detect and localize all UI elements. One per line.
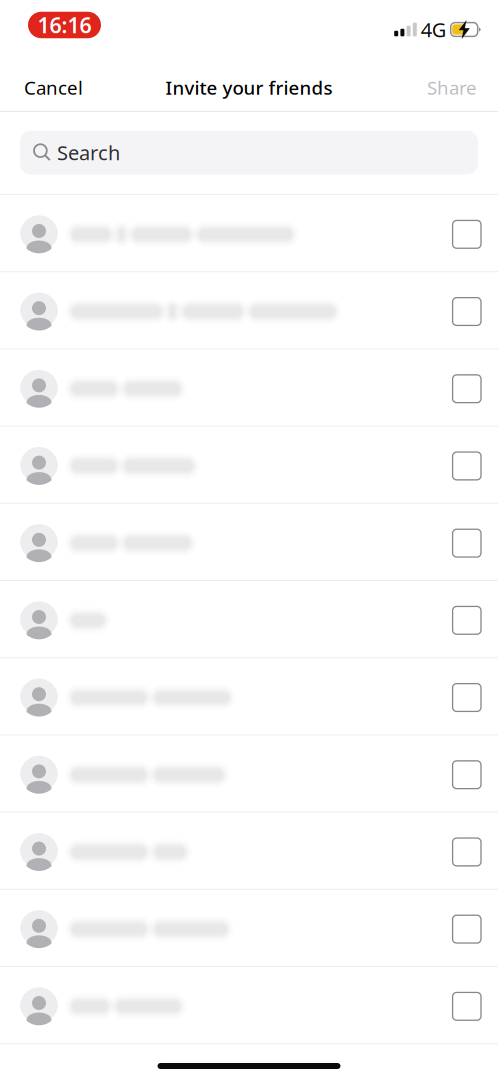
staticText: Cancel bbox=[24, 75, 83, 100]
staticText: 16:16 bbox=[37, 11, 91, 39]
button[interactable] bbox=[0, 504, 498, 581]
button[interactable] bbox=[0, 890, 498, 967]
staticText: Search bbox=[57, 139, 120, 166]
button[interactable] bbox=[0, 813, 498, 890]
button[interactable] bbox=[0, 581, 498, 658]
button[interactable] bbox=[0, 735, 498, 813]
button[interactable]: Share bbox=[419, 65, 485, 109]
staticText: 4G bbox=[421, 16, 447, 43]
button[interactable] bbox=[0, 427, 498, 504]
button[interactable] bbox=[0, 272, 498, 349]
button[interactable]: Cancel bbox=[16, 65, 91, 109]
button[interactable] bbox=[0, 658, 498, 735]
button[interactable]: Search bbox=[20, 130, 478, 174]
staticText: Share bbox=[427, 75, 477, 100]
button[interactable] bbox=[0, 349, 498, 427]
button[interactable] bbox=[0, 967, 498, 1044]
button[interactable] bbox=[0, 195, 498, 272]
staticText: Invite your friends bbox=[165, 75, 332, 100]
